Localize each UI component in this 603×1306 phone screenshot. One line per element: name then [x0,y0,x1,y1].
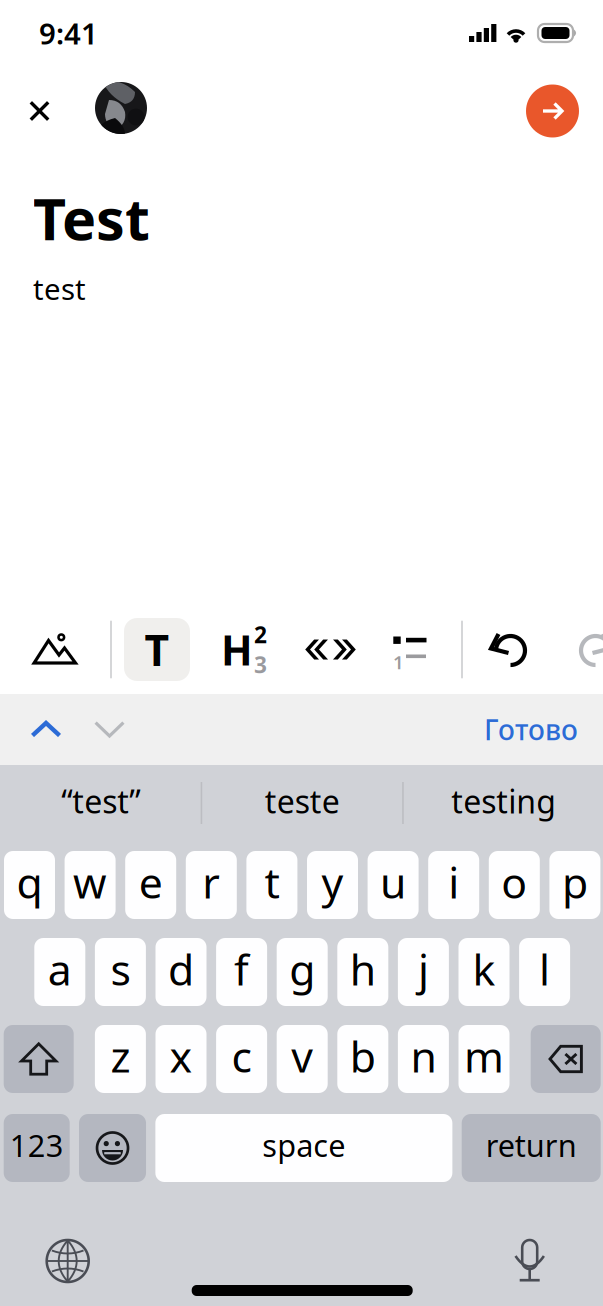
staticText: t [264,854,279,910]
staticText: v [291,1028,313,1084]
button[interactable]: z [95,1025,146,1093]
button[interactable]: Redo [553,605,603,694]
staticText: k [472,941,495,997]
button[interactable]: h [337,938,388,1006]
staticText: H [221,622,253,677]
button[interactable]: Insert image [0,605,110,694]
button[interactable]: teste [202,765,402,841]
staticText: T [144,621,169,678]
button[interactable]: g [277,938,328,1006]
button[interactable]: Undo [463,605,553,694]
staticText: d [168,941,194,997]
button[interactable]: Quote [286,605,368,694]
staticText: 1 [393,649,404,674]
staticText: p [562,854,588,910]
button[interactable]: v [277,1025,328,1093]
button[interactable]: Previous field [12,694,80,764]
staticText: 123 [10,1125,64,1165]
staticText: e [139,854,163,910]
button[interactable]: Send [526,84,579,137]
button[interactable]: Delete [531,1025,601,1093]
staticText: Готово [484,711,578,748]
staticText: 3 [254,649,267,680]
staticText: return [486,1125,577,1165]
staticText: space [262,1125,345,1165]
staticText: u [380,854,406,910]
button[interactable]: Close [10,80,69,141]
button[interactable]: Text style [112,605,202,694]
button[interactable]: Next field [80,695,143,764]
button[interactable]: testing [404,765,603,841]
button[interactable]: i [428,851,479,919]
staticText: y [321,854,343,910]
staticText: 9:41 [39,13,98,52]
button[interactable]: f [216,938,267,1006]
button[interactable]: Готово [472,693,590,766]
staticText: m [464,1028,504,1084]
button[interactable]: Emoji [79,1114,146,1182]
button[interactable]: l [519,938,570,1006]
staticText: j [418,941,429,997]
button[interactable]: a [34,938,85,1006]
button[interactable]: w [65,851,116,919]
button[interactable]: m [458,1025,509,1093]
staticText: g [289,941,315,997]
staticText: a [48,941,72,997]
staticText: o [501,854,527,910]
button[interactable]: b [337,1025,388,1093]
button[interactable]: n [398,1025,449,1093]
staticText: 2 [254,619,267,649]
staticText: teste [265,780,340,822]
button[interactable]: “test” [1,765,201,841]
button[interactable]: Shift [4,1025,74,1093]
button[interactable]: Dictation [508,1238,552,1284]
button[interactable]: x [155,1025,206,1093]
staticText: x [169,1028,192,1084]
button[interactable]: j [398,938,449,1006]
staticText: w [73,854,107,910]
button[interactable]: c [216,1025,267,1093]
staticText: r [202,854,220,910]
staticText: testing [451,780,556,822]
button[interactable]: k [458,938,509,1006]
staticText: “test” [61,780,140,822]
button[interactable]: List [368,605,452,694]
staticText: h [350,941,376,997]
staticText: b [350,1028,376,1084]
button[interactable]: d [155,938,206,1006]
button[interactable]: q [4,851,55,919]
button[interactable]: o [489,851,540,919]
staticText: c [232,1028,252,1084]
staticText: f [234,941,249,997]
button[interactable]: t [246,851,297,919]
button[interactable]: 123 [4,1114,70,1182]
button[interactable]: e [125,851,176,919]
button[interactable]: Switch keyboard [46,1239,90,1283]
button[interactable]: y [307,851,358,919]
staticText: l [539,941,550,997]
button[interactable]: p [549,851,600,919]
staticText: n [410,1028,436,1084]
button[interactable]: s [95,938,146,1006]
staticText: z [110,1028,130,1084]
button[interactable]: return [462,1114,601,1182]
button[interactable]: Profile [69,85,147,137]
staticText: test [33,269,86,308]
staticText: Test [33,180,150,256]
button[interactable]: Heading [202,605,286,694]
staticText: s [110,941,130,997]
button[interactable]: r [186,851,237,919]
button[interactable]: u [368,851,419,919]
staticText: q [16,854,42,910]
staticText: i [448,854,459,910]
button[interactable]: space [155,1114,452,1182]
